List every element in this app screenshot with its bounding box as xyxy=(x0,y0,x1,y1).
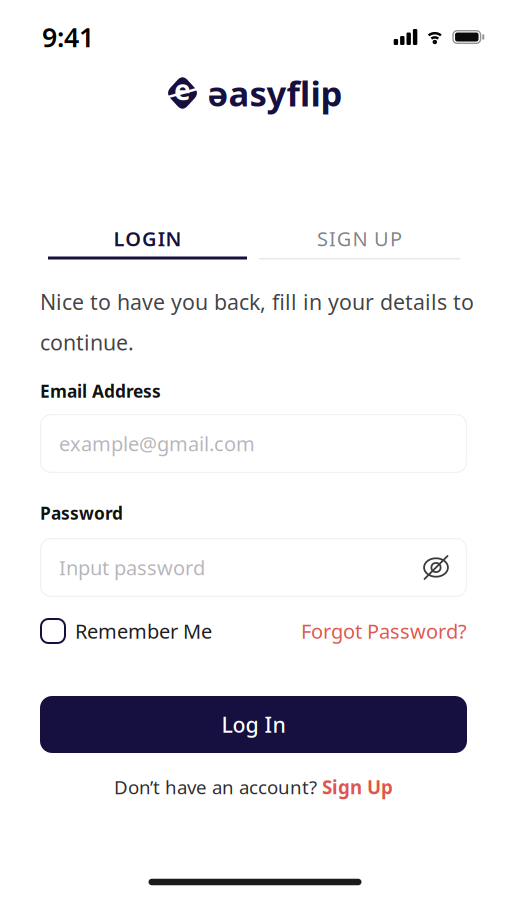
staticText: Input password xyxy=(59,554,205,581)
staticText: LOGIN xyxy=(113,225,182,252)
staticText: Nice to have you back, fill in your deta… xyxy=(40,288,474,356)
button[interactable]: Forgot Password? xyxy=(301,618,467,644)
staticText: Email Address xyxy=(40,379,161,402)
staticText: SIGN UP xyxy=(317,225,402,252)
staticText: Remember Me xyxy=(75,618,212,644)
button[interactable]: Remember Me xyxy=(40,618,212,644)
button[interactable]: SIGN UP xyxy=(259,223,460,253)
staticText: 9:41 xyxy=(42,19,94,55)
staticText: Password xyxy=(40,501,123,524)
staticText: Forgot Password? xyxy=(301,618,467,644)
button[interactable]: Sign Up xyxy=(322,775,393,799)
button[interactable]: Show password xyxy=(423,554,449,580)
staticText: e xyxy=(174,71,191,108)
staticText: Don’t have an account? xyxy=(114,775,317,799)
staticText: Sign Up xyxy=(322,775,393,799)
staticText: ǝasyflip xyxy=(207,70,342,116)
staticText: example@gmail.com xyxy=(59,430,255,457)
button[interactable]: Log In xyxy=(40,696,467,753)
staticText: Log In xyxy=(221,710,285,739)
button[interactable]: LOGIN xyxy=(48,223,247,253)
